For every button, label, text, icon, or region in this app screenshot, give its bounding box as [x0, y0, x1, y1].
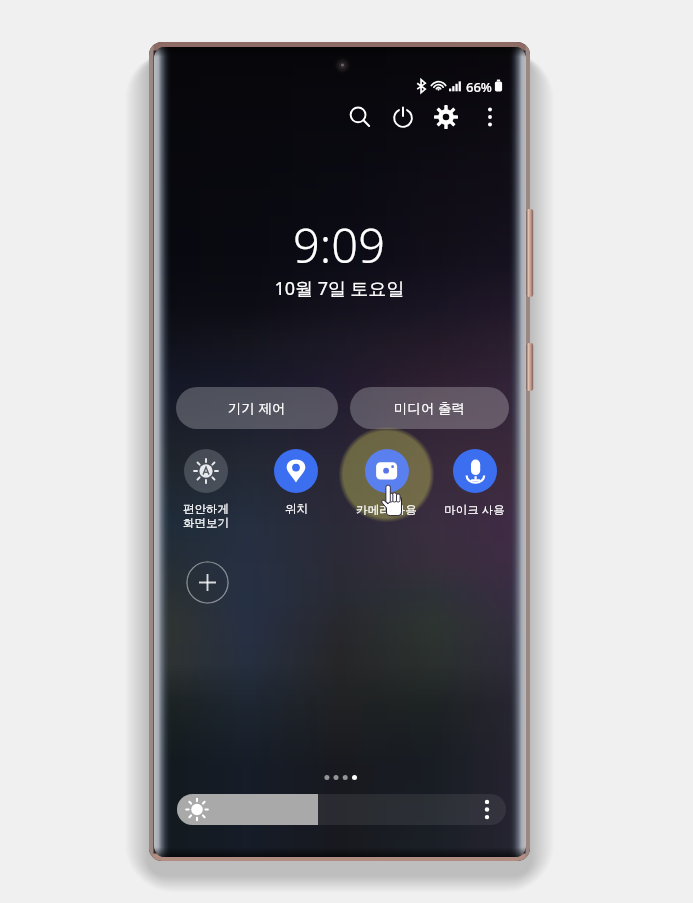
- staticText: 기기 제어: [228, 399, 286, 417]
- button[interactable]: Search: [340, 97, 380, 137]
- button[interactable]: Brightness: [177, 794, 506, 825]
- staticText: 9:09: [293, 213, 385, 277]
- staticText: 편안하게 화면보기: [183, 502, 229, 531]
- button[interactable]: 카메라 사용: [342, 449, 430, 541]
- button[interactable]: 편안하게 화면보기: [162, 449, 250, 541]
- staticText: 미디어 출력: [394, 399, 466, 417]
- button[interactable]: 기기 제어: [176, 387, 338, 429]
- staticText: 카메라 사용: [356, 502, 417, 518]
- staticText: 66%: [466, 78, 492, 94]
- button[interactable]: 위치: [252, 449, 340, 541]
- button[interactable]: 마이크 사용: [430, 449, 518, 541]
- button[interactable]: Settings: [426, 97, 466, 137]
- button[interactable]: 미디어 출력: [350, 387, 509, 429]
- button[interactable]: More options: [470, 97, 510, 137]
- button[interactable]: Power: [383, 97, 423, 137]
- button[interactable]: Add tile: [186, 561, 229, 604]
- staticText: 10월 7일 토요일: [274, 276, 405, 301]
- staticText: 마이크 사용: [444, 502, 505, 518]
- staticText: 위치: [285, 502, 308, 516]
